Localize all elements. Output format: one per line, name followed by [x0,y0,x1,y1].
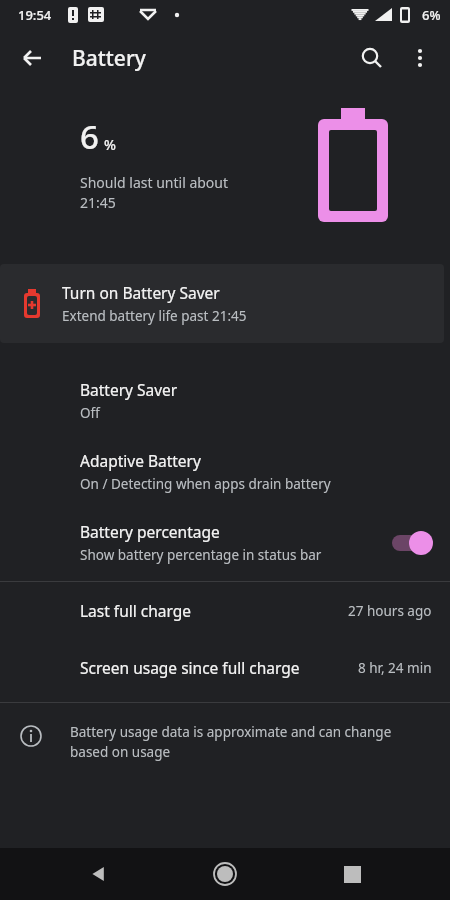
staticText: 6 [80,114,99,159]
button[interactable]: Turn on Battery Saver [0,264,444,343]
button[interactable]: Battery percentage [0,507,450,578]
button[interactable]: Adaptive Battery [0,436,450,507]
staticText: Battery [72,44,146,73]
button[interactable]: Back [71,848,127,900]
staticText: Off [80,404,100,422]
staticText: Should last until about 21:45 [80,173,229,212]
button[interactable]: Back [8,34,56,82]
staticText: Show battery percentage in status bar [80,546,322,564]
staticText: Battery usage data is approximate and ca… [70,723,430,761]
staticText: 27 hours ago [348,602,432,620]
staticText: Battery percentage [80,521,220,542]
staticText: Turn on Battery Saver [62,282,220,303]
staticText: % [104,135,116,154]
staticText: Battery Saver [80,379,178,400]
button[interactable]: Battery Saver [0,365,450,436]
button[interactable]: More options [396,34,444,82]
staticText: Screen usage since full charge [80,657,358,678]
button[interactable]: Home [197,848,253,900]
button[interactable]: Screen usage since full charge [0,639,450,696]
staticText: Extend battery life past 21:45 [62,307,247,325]
button[interactable]: Search [348,34,396,82]
staticText: On / Detecting when apps drain battery [80,475,331,493]
staticText: 19:54 [18,6,52,24]
button[interactable]: Recent apps [324,848,380,900]
staticText: Adaptive Battery [80,450,201,471]
staticText: 6% [422,6,441,24]
staticText: 8 hr, 24 min [358,659,432,677]
staticText: Last full charge [80,600,348,621]
button[interactable]: Last full charge [0,582,450,639]
